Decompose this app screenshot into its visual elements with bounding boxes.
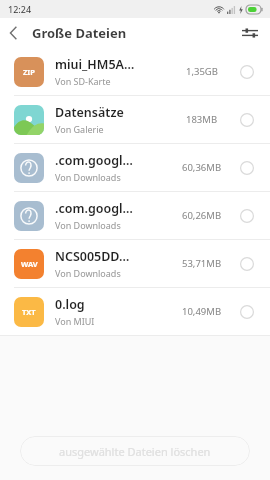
staticText: 183MB <box>186 113 218 126</box>
button[interactable]: Sort <box>238 21 262 45</box>
staticText: 0.log <box>55 296 85 313</box>
staticText: .com.googl… <box>55 152 133 169</box>
button[interactable]: Select NCS005DD… <box>234 251 260 277</box>
staticText: Von SD-Karte <box>55 75 111 87</box>
staticText: 60,36MB <box>182 161 222 174</box>
staticText: Von Downloads <box>55 267 121 279</box>
staticText: .com.googl… <box>55 200 133 217</box>
button[interactable]: .com.googl… <box>0 144 270 191</box>
staticText: 12:24 <box>8 3 32 15</box>
staticText: ZIP <box>23 67 35 77</box>
button[interactable]: Select .com.googl… <box>234 203 260 229</box>
button[interactable]: ausgewählte Dateien löschen <box>20 436 250 466</box>
staticText: 60,26MB <box>182 209 222 222</box>
button[interactable]: ZIP <box>0 48 270 95</box>
staticText: Große Dateien <box>32 24 127 42</box>
staticText: ausgewählte Dateien löschen <box>59 444 211 459</box>
staticText: 10,49MB <box>182 305 222 318</box>
button[interactable]: .com.googl… <box>0 192 270 239</box>
staticText: NCS005DD… <box>55 248 130 265</box>
staticText: Datensätze <box>55 104 124 121</box>
staticText: WAV <box>21 259 38 269</box>
staticText: Von MIUI <box>55 315 95 327</box>
button[interactable]: Back <box>0 20 26 46</box>
button[interactable]: Select .com.googl… <box>234 155 260 181</box>
staticText: TXT <box>22 307 36 317</box>
staticText: miui_HM5A… <box>55 56 135 73</box>
button[interactable]: TXT <box>0 288 270 335</box>
staticText: Von Galerie <box>55 123 104 135</box>
staticText: Von Downloads <box>55 219 121 231</box>
button[interactable]: Select Datensätze <box>234 107 260 133</box>
button[interactable]: WAV <box>0 240 270 287</box>
staticText: Von Downloads <box>55 171 121 183</box>
button[interactable]: Select 0.log <box>234 299 260 325</box>
staticText: 1,35GB <box>186 65 218 78</box>
button[interactable]: Select miui_HM5A… <box>234 59 260 85</box>
staticText: 53,71MB <box>182 257 222 270</box>
button[interactable]: Datensätze <box>0 96 270 143</box>
